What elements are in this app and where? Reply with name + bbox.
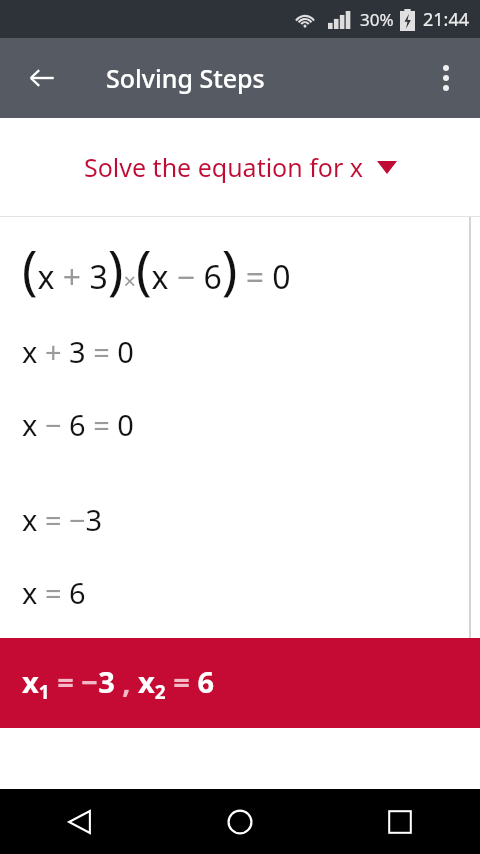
button[interactable]: x1 = −3 , x2 = 6 <box>0 638 480 728</box>
staticText: Solving Steps <box>106 61 265 95</box>
staticText: x − 6 = 0 <box>22 405 134 444</box>
button[interactable]: Back <box>0 789 160 854</box>
button[interactable]: Home <box>160 789 320 854</box>
staticText: Solve the equation for x <box>84 150 363 184</box>
button[interactable]: Solve the equation for x <box>0 118 480 216</box>
button[interactable]: Recent apps <box>320 789 480 854</box>
staticText: 21:44 <box>423 7 470 32</box>
staticText: x = −3 <box>22 500 103 539</box>
staticText: (x + 3)×(x − 6) = 0 <box>22 233 291 304</box>
button[interactable]: Back <box>14 50 70 106</box>
staticText: 30% <box>360 8 394 31</box>
staticText: x + 3 = 0 <box>22 332 134 371</box>
button[interactable]: More options <box>420 52 472 104</box>
staticText: x = 6 <box>22 573 86 612</box>
staticText: x1 = −3 , x2 = 6 <box>22 662 214 705</box>
